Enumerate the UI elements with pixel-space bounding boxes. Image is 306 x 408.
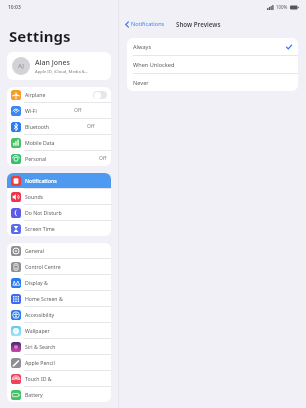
staticText: Siri & Search (25, 343, 56, 350)
staticText: Personal Hotspot (25, 155, 62, 162)
staticText: Notifications (131, 20, 165, 28)
staticText: When Unlocked (133, 61, 292, 69)
staticText: Show Previews (176, 20, 221, 28)
staticText: Display & Brightness (25, 279, 66, 286)
staticText: Settings (9, 26, 71, 46)
staticText: Mobile Data (25, 139, 55, 146)
staticText: Airplane Mode (25, 91, 59, 98)
staticText: Apple ID, iCloud, Media &… (35, 69, 89, 75)
staticText: Touch ID & Passcode (25, 375, 66, 382)
staticText: Home Screen & Dock (25, 295, 66, 302)
button[interactable]: Personal Hotspot (7, 151, 111, 166)
staticText: 10:03 (8, 4, 21, 11)
staticText: Always (133, 43, 286, 51)
staticText: Wi-Fi (25, 107, 37, 114)
staticText: Off (74, 107, 82, 114)
button[interactable]: General (7, 243, 111, 258)
staticText: Apple Pencil (25, 359, 55, 366)
button[interactable]: Airplane Mode (7, 87, 111, 102)
staticText: General (25, 247, 45, 254)
button[interactable]: Always (127, 38, 298, 55)
button[interactable]: Mobile Data (7, 135, 111, 150)
staticText: Off (99, 155, 107, 162)
button[interactable]: Touch ID & Passcode (7, 371, 111, 386)
button[interactable]: Control Centre (7, 259, 111, 274)
button[interactable]: Siri & Search (7, 339, 111, 354)
button[interactable]: Notifications (7, 173, 111, 188)
button[interactable]: AJ (7, 52, 111, 80)
button[interactable]: When Unlocked (127, 56, 298, 73)
other: Airplane Mode toggle (93, 91, 107, 99)
staticText: Notifications (25, 177, 57, 184)
staticText: AJ (18, 62, 24, 70)
staticText: Screen Time (25, 225, 55, 232)
staticText: Battery (25, 391, 43, 398)
button[interactable]: Screen Time (7, 221, 111, 236)
staticText: Accessibility (25, 311, 55, 318)
button[interactable]: Wallpaper (7, 323, 111, 338)
button[interactable]: Accessibility (7, 307, 111, 322)
staticText: Alan Jones (35, 58, 70, 68)
button[interactable]: Never (127, 74, 298, 91)
staticText: Wallpaper (25, 327, 50, 334)
button[interactable]: Bluetooth (7, 119, 111, 134)
staticText: Off (87, 123, 95, 130)
staticText: Do Not Disturb (25, 209, 62, 216)
button[interactable]: Battery (7, 387, 111, 402)
button[interactable]: Notifications (123, 18, 167, 30)
button[interactable]: Apple Pencil (7, 355, 111, 370)
button[interactable]: Sounds (7, 189, 111, 204)
staticText: Sounds (25, 193, 44, 200)
button[interactable]: Wi-Fi (7, 103, 111, 118)
staticText: Control Centre (25, 263, 61, 270)
staticText: Never (133, 79, 292, 87)
button[interactable]: Home Screen & Dock (7, 291, 111, 306)
button[interactable]: Do Not Disturb (7, 205, 111, 220)
button[interactable]: Display & Brightness (7, 275, 111, 290)
staticText: 100% (276, 4, 288, 10)
staticText: Bluetooth (25, 123, 50, 130)
